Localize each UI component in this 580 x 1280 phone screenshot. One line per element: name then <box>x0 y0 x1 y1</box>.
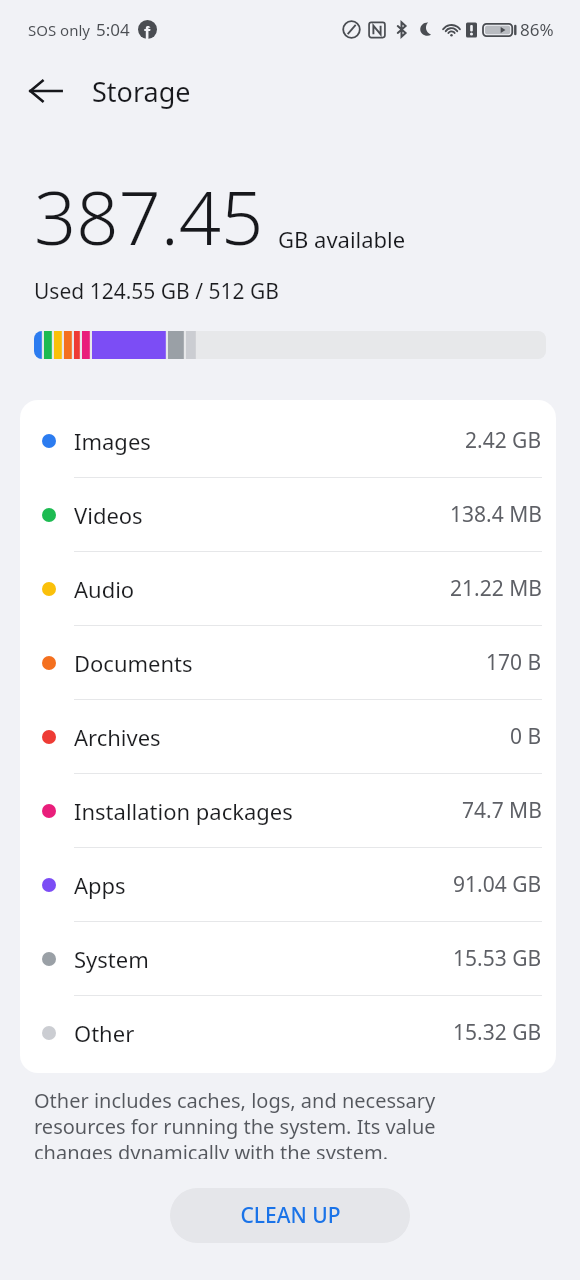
staticText: Archives <box>74 722 161 752</box>
staticText: 0 B <box>510 722 542 751</box>
staticText: 5:04 <box>96 18 130 41</box>
button[interactable]: Apps <box>20 848 556 921</box>
staticText: Storage <box>92 73 191 110</box>
staticText: Apps <box>74 870 126 900</box>
staticText: Audio <box>74 574 135 604</box>
staticText: 86% <box>520 18 554 41</box>
staticText: Documents <box>74 648 193 678</box>
button[interactable]: Back <box>20 65 72 117</box>
staticText: 91.04 GB <box>453 870 542 899</box>
button[interactable]: Other <box>20 996 556 1069</box>
button[interactable]: Audio <box>20 552 556 625</box>
staticText: 15.53 GB <box>453 944 542 973</box>
staticText: System <box>74 944 149 974</box>
button[interactable]: CLEAN UP <box>170 1188 410 1243</box>
staticText: 138.4 MB <box>450 500 542 529</box>
staticText: 15.32 GB <box>453 1018 542 1047</box>
staticText: 74.7 MB <box>462 796 542 825</box>
staticText: 387.45 <box>34 166 264 267</box>
button[interactable]: Videos <box>20 478 556 551</box>
staticText: 2.42 GB <box>465 426 542 455</box>
staticText: Videos <box>74 500 143 530</box>
button[interactable]: Installation packages <box>20 774 556 847</box>
staticText: 170 B <box>486 648 542 677</box>
staticText: Installation packages <box>74 796 293 826</box>
staticText: SOS only <box>28 20 90 40</box>
staticText: 21.22 MB <box>450 574 542 603</box>
staticText: Other includes caches, logs, and necessa… <box>34 1087 510 1159</box>
staticText: CLEAN UP <box>240 1201 341 1230</box>
staticText: Other <box>74 1018 135 1048</box>
button[interactable]: System <box>20 922 556 995</box>
button[interactable]: Images <box>20 404 556 477</box>
staticText: Images <box>74 426 151 456</box>
button[interactable]: Documents <box>20 626 556 699</box>
staticText: GB available <box>278 224 406 254</box>
staticText: Used 124.55 GB / 512 GB <box>34 277 279 306</box>
button[interactable]: Archives <box>20 700 556 773</box>
